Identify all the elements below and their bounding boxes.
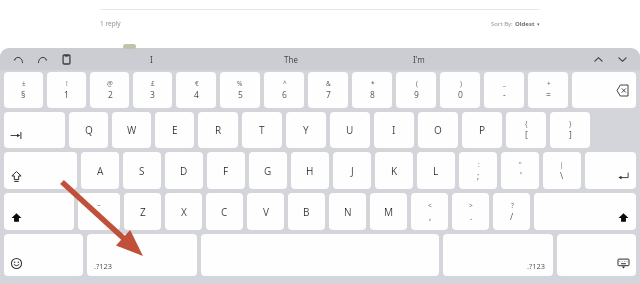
staticText: I (392, 123, 396, 137)
button[interactable]: ? (493, 193, 530, 230)
staticText: € (195, 79, 199, 88)
button[interactable]: : (459, 152, 497, 189)
staticText: S (139, 164, 145, 178)
button[interactable]: U (330, 112, 370, 148)
button[interactable]: ~ (78, 193, 120, 230)
button[interactable]: Hide keyboard (557, 234, 636, 276)
button[interactable]: G (249, 152, 287, 189)
button[interactable]: M (370, 193, 407, 230)
button[interactable]: N (329, 193, 366, 230)
button[interactable]: € (176, 72, 216, 108)
staticText: } (569, 119, 572, 128)
button[interactable]: ( (396, 72, 436, 108)
button[interactable]: Caps lock (4, 152, 77, 189)
button[interactable]: I'm (353, 48, 484, 70)
staticText: N (344, 205, 352, 219)
staticText: P (479, 123, 486, 137)
button[interactable]: { (506, 112, 546, 148)
button[interactable]: Emoji (4, 234, 83, 276)
button[interactable]: Shift (4, 193, 74, 230)
button[interactable]: O (418, 112, 458, 148)
staticText: R (215, 123, 222, 137)
button[interactable]: B (288, 193, 325, 230)
button[interactable]: Previous (590, 51, 606, 67)
staticText: T (259, 123, 265, 137)
staticText: The (284, 54, 298, 65)
button[interactable]: £ (133, 72, 172, 108)
button[interactable]: W (112, 112, 151, 148)
staticText: V (263, 205, 269, 219)
button[interactable]: " (501, 152, 539, 189)
button[interactable]: X (165, 193, 202, 230)
staticText: " (519, 160, 522, 169)
staticText: F (223, 164, 229, 178)
staticText: 9 (414, 89, 419, 101)
staticText: ? (511, 201, 514, 210)
button[interactable]: & (308, 72, 348, 108)
staticText: - (503, 89, 506, 101)
button[interactable]: } (550, 112, 590, 148)
staticText: E (172, 123, 178, 137)
staticText: + (547, 79, 551, 88)
button[interactable]: Next (614, 51, 630, 67)
button[interactable]: Backspace (572, 72, 636, 108)
button[interactable]: K (375, 152, 413, 189)
button[interactable]: E (155, 112, 194, 148)
button[interactable]: @ (90, 72, 129, 108)
button[interactable]: F (207, 152, 245, 189)
button[interactable]: Y (286, 112, 326, 148)
button[interactable]: Sort By: (491, 20, 540, 28)
button[interactable]: < (411, 193, 448, 230)
staticText: M (384, 205, 394, 219)
button[interactable]: ) (440, 72, 480, 108)
button[interactable]: Paste (58, 51, 74, 67)
button[interactable]: .?123 (443, 234, 553, 276)
button[interactable]: I (74, 48, 229, 70)
button[interactable]: Enter (585, 152, 636, 189)
button[interactable]: S (123, 152, 161, 189)
staticText: : (478, 160, 480, 169)
button[interactable]: ^ (264, 72, 304, 108)
button[interactable]: + (528, 72, 568, 108)
button[interactable]: T (242, 112, 282, 148)
staticText: ; (477, 170, 480, 182)
button[interactable]: | (543, 152, 581, 189)
button[interactable]: _ (484, 72, 524, 108)
button[interactable]: P (462, 112, 502, 148)
staticText: = (546, 89, 551, 101)
button[interactable]: A (81, 152, 119, 189)
button[interactable]: > (452, 193, 489, 230)
button[interactable]: The (229, 48, 353, 70)
button[interactable]: Tab (4, 112, 65, 148)
button[interactable]: ! (47, 72, 86, 108)
button[interactable]: Z (124, 193, 161, 230)
staticText: Oldest (515, 20, 537, 28)
staticText: G (264, 164, 272, 178)
button[interactable]: Redo (34, 51, 50, 67)
button[interactable]: D (165, 152, 203, 189)
button[interactable]: Q (69, 112, 108, 148)
button[interactable]: Shift (534, 193, 636, 230)
staticText: 1 reply (100, 19, 121, 28)
staticText: J (351, 164, 354, 178)
button[interactable]: V (247, 193, 284, 230)
staticText: K (391, 164, 398, 178)
button[interactable]: J (333, 152, 371, 189)
staticText: ▾ (537, 21, 540, 27)
staticText: B (303, 205, 310, 219)
button[interactable]: Undo (10, 51, 26, 67)
staticText: > (469, 201, 473, 210)
button[interactable]: .?123 (87, 234, 197, 276)
button[interactable]: ± (4, 72, 43, 108)
button[interactable]: C (206, 193, 243, 230)
button[interactable]: % (220, 72, 260, 108)
staticText: 5 (238, 89, 243, 101)
button[interactable]: I (374, 112, 414, 148)
button[interactable]: H (291, 152, 329, 189)
staticText: Sort By: (491, 20, 515, 28)
button[interactable]: * (352, 72, 392, 108)
staticText: 0 (458, 89, 463, 101)
button[interactable]: L (417, 152, 455, 189)
button[interactable]: R (198, 112, 238, 148)
